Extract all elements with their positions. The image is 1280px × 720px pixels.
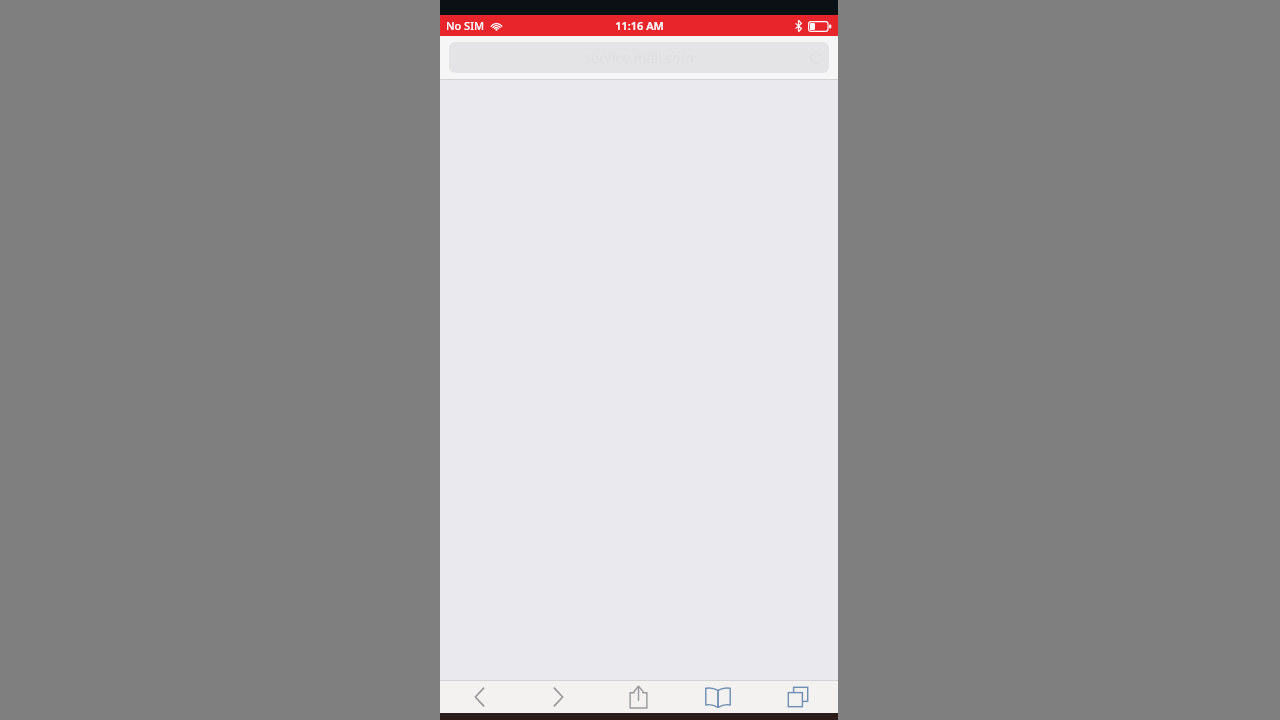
staticText: 11:16 AM: [615, 18, 664, 33]
button[interactable]: Bookmarks: [678, 681, 758, 713]
staticText: No SIM: [446, 18, 485, 33]
button[interactable]: Share: [598, 681, 678, 713]
button[interactable]: Back: [440, 681, 519, 713]
button[interactable]: Tabs: [758, 681, 838, 713]
button[interactable]: Forward: [519, 681, 598, 713]
